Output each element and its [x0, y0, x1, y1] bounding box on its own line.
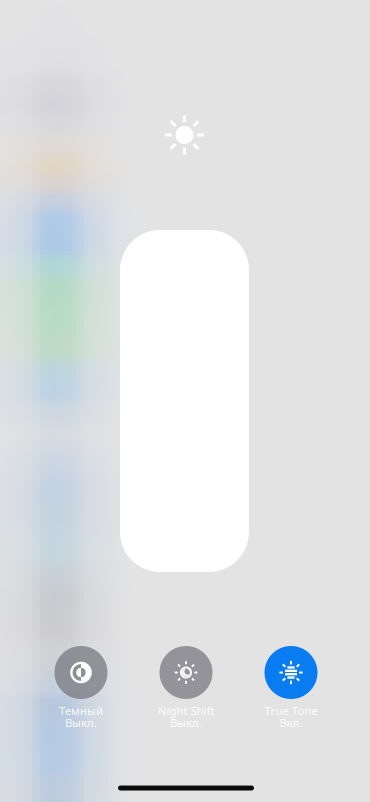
staticText: Вкл. — [279, 715, 302, 730]
staticText: Выкл. — [65, 715, 97, 730]
button[interactable]: Темный, Выкл. — [38, 646, 124, 728]
staticText: True Tone — [264, 703, 317, 718]
staticText: Темный — [59, 703, 103, 718]
staticText: Выкл. — [170, 715, 202, 730]
button[interactable]: True Tone, Вкл. — [248, 646, 334, 728]
button[interactable]: Night Shift, Выкл. — [143, 646, 229, 728]
staticText: Night Shift — [157, 703, 214, 718]
